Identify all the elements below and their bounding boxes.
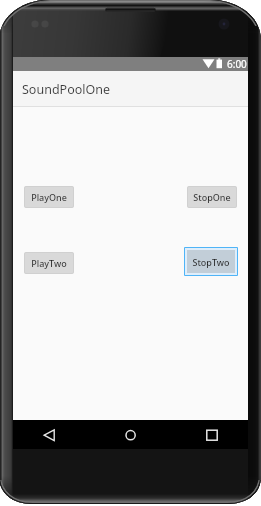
staticText: SoundPoolOne [22,81,111,98]
staticText: PlayOne [31,191,67,203]
staticText: StopTwo [192,256,230,268]
button[interactable]: Back [13,420,91,449]
button[interactable]: StopOne [187,186,237,208]
button[interactable]: PlayTwo [24,252,74,274]
button[interactable]: Recent apps [170,420,248,449]
button[interactable]: StopTwo [187,250,235,273]
staticText: PlayTwo [31,257,67,269]
staticText: 6:00 [227,57,247,71]
button[interactable]: Home [91,420,170,449]
button[interactable]: PlayOne [24,186,74,208]
staticText: StopOne [193,191,231,203]
